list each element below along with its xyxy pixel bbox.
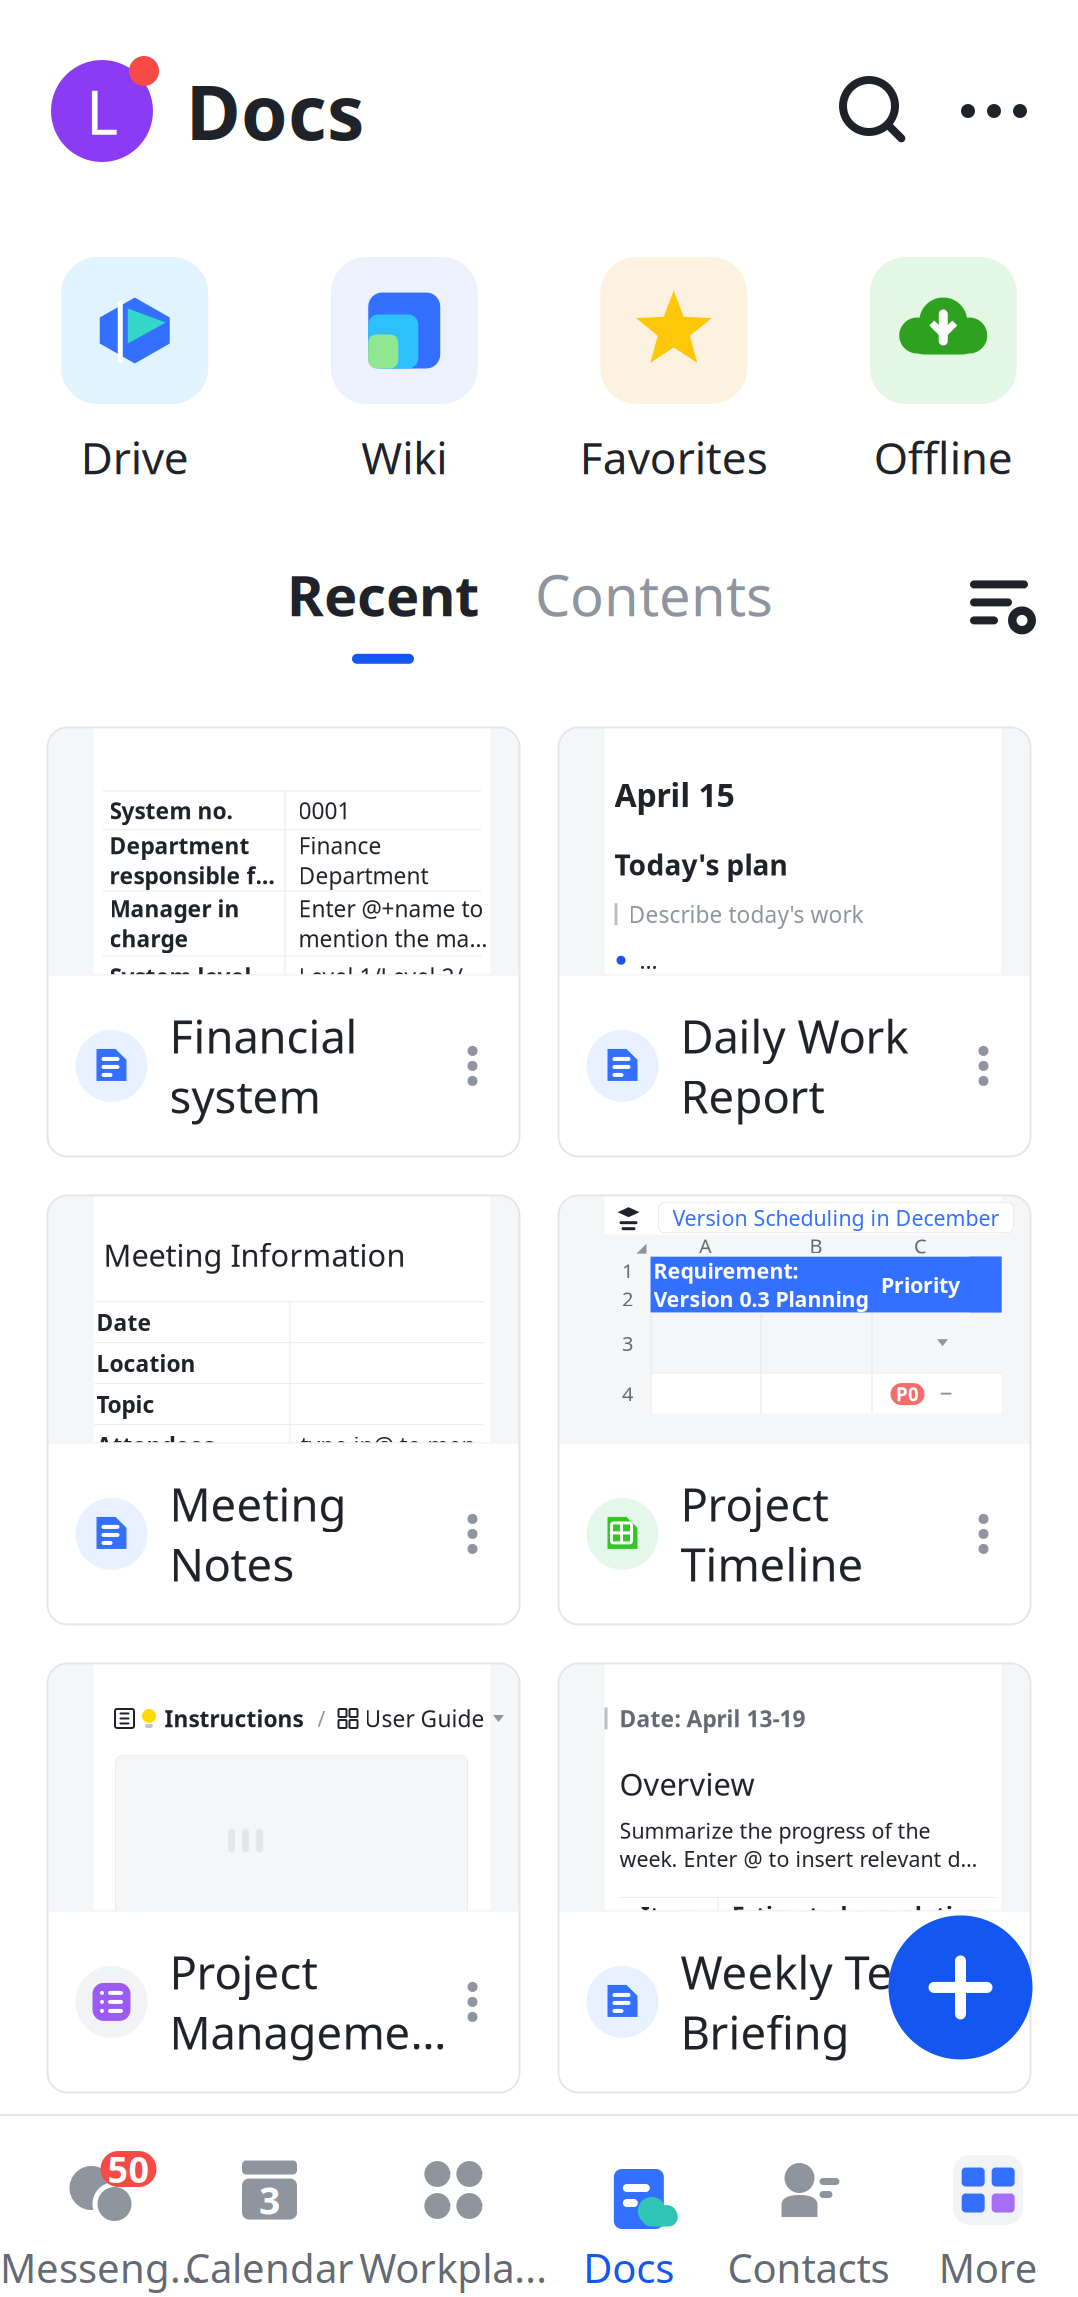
button[interactable]: Contents — [535, 557, 773, 664]
staticText: Drive — [81, 428, 189, 486]
staticText: Enter @+name to mention the manager in c… — [298, 893, 487, 953]
button[interactable]: Create — [888, 1915, 1032, 2059]
staticText: Today's plan — [614, 846, 787, 883]
staticText: Level 1/Level 2/Level 3 — [298, 961, 487, 991]
staticText: Version Scheduling in December — [672, 1203, 999, 1232]
staticText: P0 — [896, 1382, 919, 1406]
staticText: Workpla... — [359, 2241, 547, 2294]
staticText: Date: April 13-19 — [619, 1703, 805, 1733]
staticText: 2 — [622, 1285, 633, 1312]
staticText: Calendar — [185, 2241, 354, 2294]
staticText: type in@ to mention yourse — [300, 1430, 495, 1460]
button[interactable]: Sort and filter — [966, 574, 1032, 630]
staticText: Meeting Notes — [169, 1474, 346, 1594]
staticText: 4 — [622, 1380, 633, 1407]
staticText: B — [809, 1232, 822, 1259]
button[interactable]: Drive — [0, 257, 269, 486]
staticText: Wiki — [361, 428, 447, 486]
staticText: Recent — [287, 557, 479, 632]
staticText: Department responsible for formulation — [109, 830, 284, 890]
staticText: Contacts — [727, 2241, 889, 2294]
staticText: Location — [96, 1348, 195, 1378]
staticText: 50 — [107, 2145, 149, 2193]
staticText: Contents — [535, 557, 773, 632]
button[interactable]: Favorites — [539, 257, 808, 486]
staticText: 1 — [622, 1257, 633, 1284]
button[interactable]: Contacts — [719, 2151, 898, 2294]
button[interactable]: Offline — [808, 257, 1078, 486]
staticText: Overview — [619, 1763, 754, 1804]
button[interactable]: Instructions — [47, 1663, 519, 2092]
staticText: Estimated completion — [732, 1900, 982, 1930]
staticText: 0001 — [298, 795, 350, 825]
button[interactable]: Wiki — [269, 257, 539, 486]
button[interactable]: Date: April 13-19 — [558, 1663, 1030, 2092]
staticText: Finance Department — [298, 830, 428, 890]
staticText: April 15 — [614, 773, 734, 816]
staticText: Docs — [186, 61, 364, 161]
staticText: Weekly Team Briefing — [680, 1942, 959, 2062]
staticText: System no. — [109, 795, 232, 825]
button[interactable]: 50 — [0, 2151, 180, 2294]
button[interactable]: Search — [836, 73, 912, 149]
button[interactable]: Workpla... — [359, 2151, 539, 2294]
staticText: More — [939, 2241, 1038, 2294]
staticText: Attendees — [96, 1430, 214, 1460]
staticText: Financial system — [169, 1006, 357, 1126]
staticText: Describe today's work — [628, 899, 863, 929]
staticText: 3 — [622, 1330, 633, 1356]
button[interactable]: More options — [956, 73, 1032, 149]
staticText: User Guide — [364, 1703, 484, 1733]
staticText: Date — [96, 1307, 151, 1337]
staticText: C — [914, 1232, 927, 1259]
staticText: A — [699, 1232, 712, 1259]
staticText: Daily Work Report — [680, 1006, 908, 1126]
staticText: L — [86, 70, 118, 152]
staticText: Offline — [874, 428, 1013, 486]
button[interactable]: Meeting Information — [47, 1195, 519, 1624]
staticText: Item — [641, 1900, 696, 1930]
staticText: Instructions — [164, 1703, 303, 1733]
button[interactable]: Docs — [539, 2151, 719, 2294]
button[interactable]: April 15 — [558, 727, 1030, 1156]
staticText: Docs — [583, 2241, 674, 2294]
staticText: Messeng... — [0, 2241, 203, 2294]
button[interactable]: More — [898, 2151, 1078, 2294]
staticText: 3 — [259, 2175, 280, 2225]
staticText: Summarize the progress of the week. Ente… — [619, 1816, 979, 1873]
staticText: Project Timeline — [680, 1474, 863, 1594]
button[interactable]: Profile — [48, 58, 156, 164]
button[interactable]: Version Scheduling in December — [558, 1195, 1030, 1624]
button[interactable]: Recent — [287, 557, 479, 664]
button[interactable]: 3 — [180, 2151, 359, 2294]
staticText: / — [317, 1704, 325, 1733]
staticText: Topic — [96, 1389, 154, 1419]
staticText: Meeting Information — [103, 1234, 405, 1275]
staticText: Favorites — [580, 428, 768, 486]
staticText: Priority — [881, 1270, 960, 1299]
staticText: Manager in charge — [109, 893, 239, 953]
staticText: Requirement: Version 0.3 Planning — [653, 1256, 868, 1313]
staticText: ... — [639, 945, 657, 975]
staticText: System level — [109, 961, 251, 991]
button[interactable]: System no. — [47, 727, 519, 1156]
staticText: Project Management ... — [169, 1942, 451, 2062]
